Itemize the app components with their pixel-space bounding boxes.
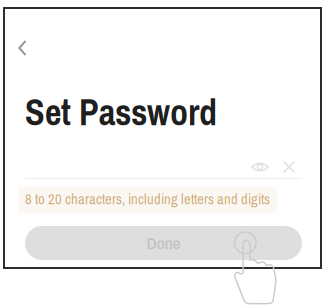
staticText: 8 to 20 characters, including letters an…	[25, 189, 270, 209]
button[interactable]: Done	[25, 226, 302, 260]
button[interactable]: Clear password	[276, 154, 302, 180]
button[interactable]: Show password	[245, 154, 275, 180]
staticText: Done	[146, 231, 180, 255]
staticText: Set Password	[25, 88, 217, 136]
button[interactable]: Back	[3, 26, 55, 70]
